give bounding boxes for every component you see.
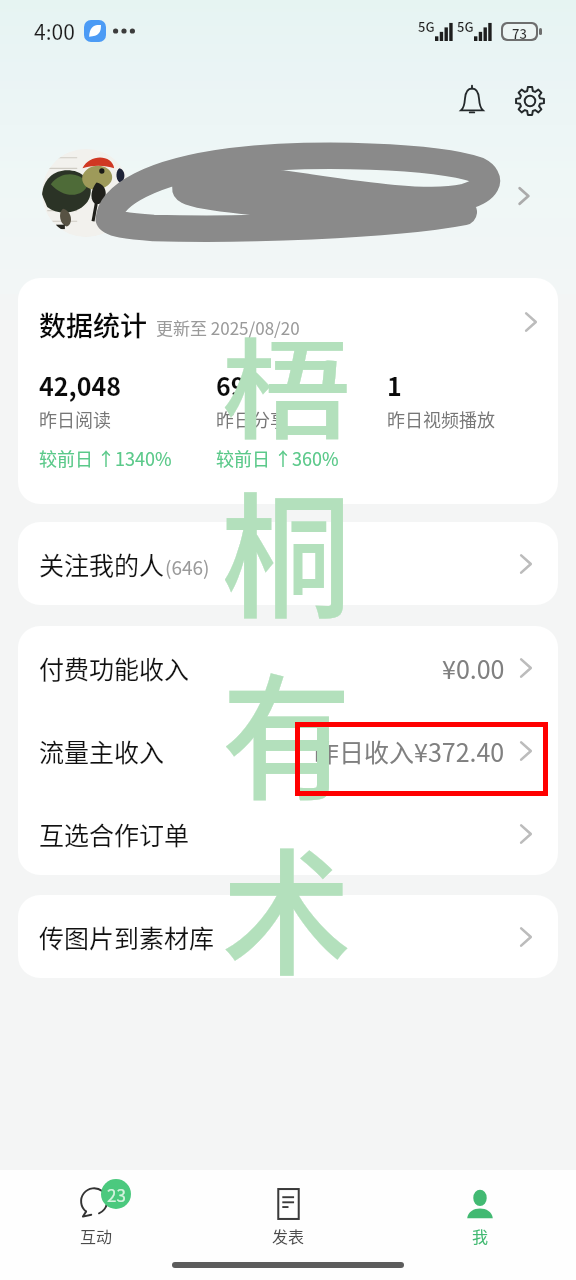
- staticText: 5G: [457, 17, 474, 36]
- button[interactable]: 流量主收入: [18, 709, 558, 792]
- button[interactable]: 发表: [192, 1170, 384, 1256]
- staticText: 有: [222, 630, 351, 827]
- staticText: 5G: [418, 17, 435, 36]
- staticText: 23: [107, 1182, 126, 1207]
- staticText: 互选合作订单: [39, 816, 190, 852]
- staticText: 较前日 ↑1340%: [39, 445, 172, 471]
- staticText: 1: [387, 367, 402, 403]
- button[interactable]: 数据统计: [18, 278, 558, 504]
- staticText: 流量主收入: [39, 733, 165, 769]
- staticText: 关注我的人: [39, 546, 165, 582]
- staticText: 昨日阅读: [39, 406, 111, 432]
- staticText: 传图片到素材库: [39, 919, 215, 955]
- staticText: 较前日 ↑360%: [216, 445, 339, 471]
- staticText: 术: [222, 805, 351, 1002]
- staticText: 互动: [80, 1224, 113, 1247]
- button[interactable]: 我: [384, 1170, 576, 1256]
- staticText: 69: [216, 367, 246, 403]
- staticText: 73: [512, 24, 527, 39]
- button[interactable]: 互选合作订单: [18, 792, 558, 875]
- staticText: 4:00: [34, 16, 75, 46]
- staticText: 桐: [222, 450, 351, 645]
- button[interactable]: Settings: [502, 72, 558, 128]
- staticText: 昨日视频播放: [387, 406, 495, 432]
- staticText: 我: [472, 1224, 489, 1247]
- staticText: 数据统计: [39, 305, 147, 344]
- staticText: 42,048: [39, 367, 121, 403]
- button[interactable]: 付费功能收入: [18, 626, 558, 709]
- button[interactable]: 传图片到素材库: [18, 895, 558, 978]
- staticText: 昨日分享: [216, 406, 288, 432]
- staticText: 付费功能收入: [39, 650, 190, 686]
- button[interactable]: 23: [0, 1170, 192, 1256]
- button[interactable]: 关注我的人: [18, 522, 558, 605]
- staticText: 发表: [272, 1224, 305, 1247]
- staticText: ¥0.00: [442, 650, 505, 686]
- staticText: 梧: [222, 302, 351, 460]
- staticText: 昨日收入¥372.40: [314, 733, 505, 769]
- staticText: (646): [165, 553, 210, 581]
- button[interactable]: Notifications: [444, 72, 500, 128]
- button[interactable]: [0, 138, 576, 254]
- staticText: 更新至 2025/08/20: [156, 315, 300, 340]
